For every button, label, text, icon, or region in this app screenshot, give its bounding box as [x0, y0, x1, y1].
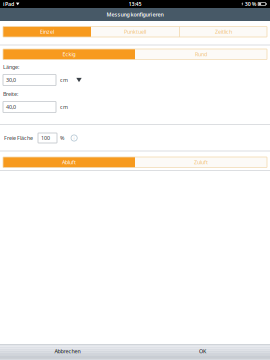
button[interactable]: Zuluft: [135, 157, 267, 167]
staticText: Breite:: [3, 90, 18, 98]
button[interactable]: OK: [135, 345, 270, 358]
button[interactable]: Punktuell: [91, 26, 179, 37]
staticText: Einzel: [40, 28, 54, 35]
button[interactable]: Einheit wählen: [76, 74, 82, 85]
staticText: Zeitlich: [215, 28, 232, 35]
staticText: i: [74, 135, 75, 141]
staticText: Länge:: [3, 63, 19, 71]
button[interactable]: 100: [38, 133, 57, 143]
button[interactable]: Einzel: [3, 26, 91, 37]
staticText: Freie Fläche: [4, 134, 33, 142]
button[interactable]: Abbrechen: [0, 345, 135, 358]
staticText: 30,0: [6, 76, 16, 84]
staticText: 100: [41, 134, 50, 142]
button[interactable]: 40,0: [3, 101, 56, 112]
staticText: 30 %: [245, 0, 257, 8]
staticText: %: [60, 134, 64, 142]
button[interactable]: Rund: [135, 49, 267, 59]
staticText: iPad: [3, 0, 14, 8]
staticText: OK: [199, 348, 206, 355]
staticText: 40,0: [6, 103, 16, 111]
staticText: Abbrechen: [54, 348, 80, 355]
staticText: Zuluft: [194, 159, 208, 166]
staticText: Eckig: [62, 51, 75, 58]
staticText: Rund: [195, 51, 207, 58]
staticText: Messung konfigurieren: [106, 11, 163, 18]
button[interactable]: Info: [71, 135, 77, 141]
staticText: Abluft: [62, 159, 76, 166]
button[interactable]: Eckig: [3, 49, 135, 59]
staticText: cm: [60, 76, 68, 84]
staticText: cm: [60, 103, 68, 111]
button[interactable]: 30,0: [3, 74, 56, 85]
button[interactable]: Zeitlich: [179, 26, 267, 37]
staticText: Punktuell: [124, 28, 146, 35]
button[interactable]: Abluft: [3, 157, 135, 167]
staticText: 13:45: [128, 0, 141, 8]
